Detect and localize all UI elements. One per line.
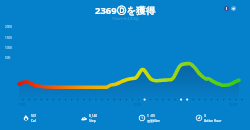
button[interactable]: Share to Facebook — [224, 6, 229, 11]
button[interactable]: 531 — [0, 106, 59, 130]
staticText: 531 — [31, 114, 37, 118]
button[interactable]: Share to Twitter — [231, 6, 236, 11]
staticText: 1 : 05 — [147, 114, 155, 118]
staticText: Cal — [31, 119, 36, 123]
staticText: 3 — [204, 114, 206, 118]
staticText: 1日の平均 2,016歩 — [112, 17, 139, 21]
button[interactable]: 3 — [179, 106, 239, 130]
staticText: 2369Ⓓを獲得 — [95, 4, 155, 17]
staticText: 12:00 — [133, 103, 142, 107]
button[interactable]: 1 : 05 — [119, 106, 179, 130]
staticText: 運動時間 — [147, 119, 160, 123]
staticText: 23:00 — [229, 103, 238, 107]
button[interactable]: 8,140 — [59, 106, 119, 130]
staticText: 0:00 — [19, 103, 26, 107]
staticText: 8,140 — [89, 114, 98, 118]
staticText: Active Hour — [204, 119, 222, 123]
staticText: Step — [89, 119, 96, 123]
staticText: 1000 — [5, 46, 13, 50]
staticText: 2000 — [5, 25, 13, 29]
staticText: 500 — [5, 56, 11, 60]
staticText: 1500 — [5, 36, 13, 40]
